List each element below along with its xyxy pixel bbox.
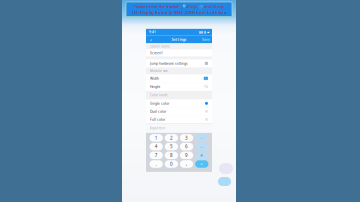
button[interactable]: Done bbox=[195, 160, 208, 168]
staticText: Settings bbox=[171, 37, 186, 42]
staticText: 8 bbox=[170, 152, 173, 158]
button[interactable]: 7 bbox=[150, 152, 163, 159]
staticText: Screen1 bbox=[150, 51, 163, 55]
staticText: Full color bbox=[150, 117, 165, 122]
staticText: 16 bbox=[204, 84, 208, 89]
staticText: 5 bbox=[170, 143, 173, 150]
button[interactable]: 5 bbox=[165, 143, 178, 150]
staticText: 3 bbox=[185, 135, 188, 141]
button[interactable]: Save bbox=[202, 35, 210, 43]
button[interactable]: 4 bbox=[150, 143, 163, 150]
button[interactable]: Jump hardware settings bbox=[146, 59, 212, 67]
button[interactable]: 9 bbox=[180, 152, 193, 159]
staticText: Jump hardware settings bbox=[150, 61, 188, 66]
staticText: Height bbox=[150, 84, 160, 89]
staticText: 1 bbox=[155, 135, 158, 141]
staticText: LED Display Board @ 99041-22990 from Lud… bbox=[132, 9, 226, 15]
staticText: . bbox=[156, 161, 157, 167]
staticText: Width bbox=[150, 76, 159, 81]
staticText: ↵ bbox=[200, 162, 203, 166]
staticText: ⊗ bbox=[200, 153, 203, 157]
staticText: – bbox=[201, 135, 203, 140]
button[interactable]: , bbox=[180, 160, 193, 168]
button[interactable]: Height bbox=[146, 82, 212, 91]
staticText: 2 bbox=[170, 135, 173, 141]
staticText: Save bbox=[202, 37, 210, 42]
staticText: 9 bbox=[185, 152, 188, 158]
staticText: Input text bbox=[150, 126, 165, 130]
button[interactable]: Screen1 bbox=[146, 49, 212, 56]
button[interactable]: Width bbox=[146, 74, 212, 82]
staticText: 32 bbox=[204, 76, 208, 80]
button[interactable]: 1 bbox=[150, 134, 163, 142]
button[interactable]: . bbox=[150, 160, 163, 168]
staticText: Screen name bbox=[150, 44, 170, 48]
button[interactable]: Single color bbox=[146, 99, 212, 107]
button[interactable]: 2 bbox=[165, 134, 178, 142]
button[interactable]: 0 bbox=[165, 160, 178, 168]
staticText: ‹ bbox=[150, 35, 152, 43]
staticText: 7 bbox=[155, 152, 158, 158]
staticText: 0 bbox=[170, 161, 173, 167]
staticText: Color mode bbox=[150, 93, 168, 97]
staticText: , bbox=[186, 161, 187, 167]
staticText: Module size bbox=[150, 69, 168, 73]
button[interactable]: 6 bbox=[180, 143, 193, 150]
button[interactable]: 8 bbox=[165, 152, 178, 159]
staticText: Please order for tracker 🔎 shop 🛒 and sh… bbox=[133, 3, 224, 9]
button[interactable]: Dual color bbox=[146, 107, 212, 115]
button[interactable]: Key – bbox=[195, 134, 208, 142]
staticText: ▮▮ ▮ ▰ bbox=[199, 30, 209, 34]
button[interactable]: 3 bbox=[180, 134, 193, 142]
staticText: Dual color bbox=[150, 109, 166, 114]
button[interactable]: Key ⌴ bbox=[195, 143, 208, 150]
staticText: 9:41 bbox=[149, 30, 156, 34]
button[interactable]: Full color bbox=[146, 115, 212, 123]
button[interactable]: Key ⊗ bbox=[195, 152, 208, 159]
staticText: 4 bbox=[155, 143, 158, 150]
staticText: Single color bbox=[150, 101, 169, 106]
button[interactable]: Back bbox=[148, 35, 154, 43]
staticText: 6 bbox=[185, 143, 188, 150]
staticText: ⌴ bbox=[200, 145, 203, 148]
